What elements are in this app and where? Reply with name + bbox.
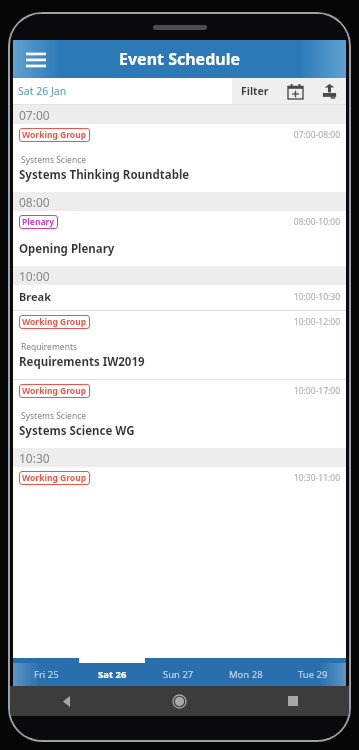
staticText: Sun 27 [163, 668, 194, 681]
button[interactable]: Working Group [13, 124, 346, 192]
button[interactable]: Plenary [13, 211, 346, 266]
staticText: Working Group [22, 129, 87, 141]
staticText: Break [19, 289, 51, 304]
button[interactable]: Home [123, 686, 236, 716]
button[interactable]: Break [13, 285, 346, 310]
staticText: 10:30 [19, 450, 50, 466]
button[interactable]: Fri 25 [13, 663, 79, 686]
staticText: Event Schedule [119, 48, 241, 70]
button[interactable]: Sun 27 [145, 663, 212, 686]
staticText: Systems Science [21, 154, 87, 166]
button[interactable]: Back [10, 686, 123, 716]
staticText: Systems Science [21, 410, 87, 422]
staticText: Mon 28 [229, 668, 263, 681]
button[interactable]: Filter [232, 78, 278, 104]
button[interactable]: Mon 28 [212, 663, 279, 686]
button[interactable]: Export schedule [312, 78, 346, 104]
staticText: 08:00-10:00 [293, 216, 340, 228]
staticText: 10:00-17:00 [293, 385, 340, 397]
staticText: Tue 29 [298, 668, 328, 681]
button[interactable]: Tue 29 [279, 663, 346, 686]
button[interactable]: Working Group [13, 467, 346, 491]
button[interactable]: Open navigation menu [19, 42, 53, 76]
staticText: Working Group [22, 385, 87, 397]
button[interactable]: Add to calendar [278, 78, 312, 104]
staticText: 10:00-12:00 [293, 316, 340, 328]
staticText: Opening Plenary [19, 241, 115, 257]
staticText: Working Group [22, 472, 87, 484]
staticText: 10:00-10:30 [293, 291, 340, 303]
staticText: Systems Science WG [19, 423, 135, 439]
staticText: Sat 26 [98, 668, 127, 681]
button[interactable]: Sat 26 Jan [13, 78, 232, 104]
staticText: Fri 25 [34, 668, 59, 681]
staticText: 10:30-11:00 [293, 472, 340, 484]
staticText: 10:00 [19, 268, 50, 284]
staticText: Systems Thinking Roundtable [19, 167, 190, 183]
button[interactable]: Working Group [13, 380, 346, 448]
staticText: Plenary [22, 216, 55, 228]
button[interactable]: Recent apps [236, 686, 349, 716]
staticText: 08:00 [19, 194, 50, 210]
staticText: Sat 26 Jan [18, 84, 67, 98]
staticText: Requirements IW2019 [19, 354, 145, 370]
staticText: Requirements [21, 341, 78, 353]
staticText: Working Group [22, 316, 87, 328]
button[interactable]: Sat 26 [79, 663, 145, 686]
staticText: 07:00-08:00 [293, 129, 340, 141]
staticText: 07:00 [19, 107, 50, 123]
staticText: Filter [241, 84, 269, 98]
button[interactable]: Working Group [13, 311, 346, 379]
